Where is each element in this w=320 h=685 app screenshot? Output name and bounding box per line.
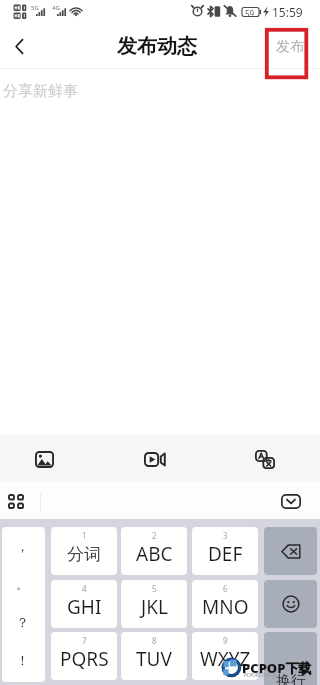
button[interactable]: Add video xyxy=(133,436,175,482)
button[interactable]: Emoji xyxy=(264,580,317,628)
button[interactable]: ！ xyxy=(2,641,45,679)
button[interactable]: Enter xyxy=(264,632,317,685)
button[interactable]: 5 xyxy=(121,580,187,628)
button[interactable]: Add image xyxy=(23,436,65,482)
staticText: 2 xyxy=(152,530,157,541)
staticText: 8 xyxy=(152,635,157,646)
button[interactable]: Hide keyboard xyxy=(278,482,304,520)
button[interactable]: ， xyxy=(2,527,45,565)
staticText: 15:59 xyxy=(272,4,303,20)
button[interactable]: 8 xyxy=(121,632,187,680)
staticText: JKL xyxy=(141,594,168,620)
staticText: 4G xyxy=(52,4,60,12)
staticText: 发布 xyxy=(276,38,304,56)
button[interactable]: 6 xyxy=(192,580,258,628)
staticText: ， xyxy=(16,538,29,554)
staticText: PCPOP下载 xyxy=(242,659,312,677)
button[interactable]: 2 xyxy=(121,527,187,575)
button[interactable]: 9 xyxy=(192,632,258,680)
staticText: GHI xyxy=(67,594,102,620)
staticText: 1 xyxy=(82,530,87,541)
staticText: ！ xyxy=(16,652,29,668)
staticText: 换行 xyxy=(276,672,306,685)
staticText: 4 xyxy=(82,583,87,594)
button[interactable]: Translate xyxy=(244,436,286,482)
staticText: 5 xyxy=(152,583,157,594)
staticText: WXYZ xyxy=(200,646,251,672)
staticText: 5G xyxy=(31,4,39,12)
button[interactable]: Keyboard options xyxy=(3,482,29,520)
staticText: 9 xyxy=(223,635,228,646)
staticText: 分词 xyxy=(67,544,101,565)
staticText: 7 xyxy=(82,635,87,646)
staticText: ABC xyxy=(136,541,173,567)
staticText: PQRS xyxy=(60,646,109,672)
staticText: 6 xyxy=(223,583,228,594)
staticText: TUV xyxy=(136,646,172,672)
staticText: PCPOP.COM.CN xyxy=(244,672,277,678)
staticText: 分享新鲜事 xyxy=(3,82,78,101)
button[interactable]: 3 xyxy=(192,527,258,575)
staticText: MNO xyxy=(202,594,249,620)
staticText: 59 xyxy=(245,8,255,19)
button[interactable]: 。 xyxy=(2,565,45,603)
button[interactable]: Backspace xyxy=(264,527,317,575)
staticText: ？ xyxy=(16,614,29,630)
button[interactable]: 1 xyxy=(51,527,117,575)
button[interactable]: 4 xyxy=(51,580,117,628)
button[interactable]: 7 xyxy=(51,632,117,680)
button[interactable]: Back xyxy=(0,24,38,69)
staticText: 3 xyxy=(223,530,228,541)
button[interactable]: 发布 xyxy=(268,24,312,69)
staticText: DEF xyxy=(208,541,243,567)
staticText: 。 xyxy=(16,576,29,592)
button[interactable]: ？ xyxy=(2,603,45,641)
staticText: 发布动态 xyxy=(117,34,197,59)
